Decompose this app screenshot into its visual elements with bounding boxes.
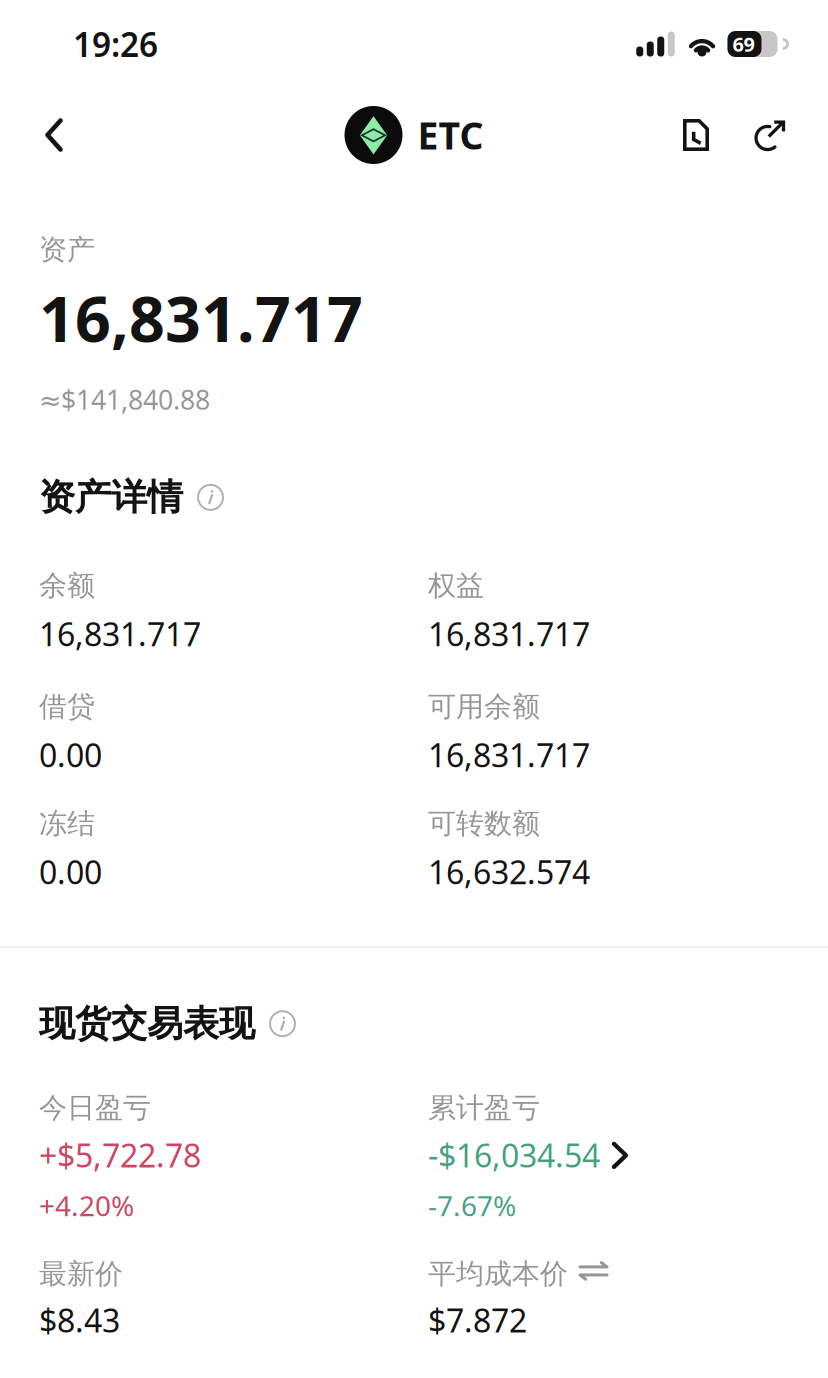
staticText: +$5,722.78 (39, 1133, 201, 1177)
button[interactable]: 累计盈亏 (428, 1090, 626, 1221)
staticText: $7.872 (428, 1298, 527, 1342)
staticText: 资产详情 (39, 475, 183, 520)
staticText: 最新价 (39, 1256, 123, 1292)
staticText: +4.20% (39, 1186, 134, 1224)
staticText: ETC (417, 110, 483, 160)
staticText: 16,831.717 (428, 612, 590, 656)
staticText: 平均成本价 (428, 1256, 568, 1292)
staticText: 0.00 (39, 733, 102, 777)
staticText: 累计盈亏 (428, 1090, 540, 1126)
button[interactable]: Switch cost basis (580, 1263, 607, 1285)
button[interactable]: Order history (661, 100, 731, 170)
staticText: 0.00 (39, 850, 102, 894)
staticText: 权益 (428, 568, 484, 603)
staticText: 16,632.574 (428, 850, 590, 894)
staticText: 69 (732, 30, 754, 58)
staticText: ≈$141,840.88 (39, 381, 210, 418)
staticText: 16,831.717 (39, 275, 363, 360)
staticText: 可用余额 (428, 689, 540, 724)
button[interactable]: About 现货交易表现 (269, 1010, 296, 1037)
staticText: -7.67% (428, 1186, 516, 1224)
staticText: 16,831.717 (39, 612, 201, 656)
staticText: 资产 (39, 232, 95, 267)
staticText: 今日盈亏 (39, 1090, 151, 1126)
button[interactable]: Share (735, 100, 805, 170)
staticText: 借贷 (39, 689, 95, 724)
staticText: 现货交易表现 (39, 1001, 255, 1046)
button[interactable]: Back (18, 99, 90, 171)
staticText: $8.43 (39, 1298, 120, 1342)
staticText: 冻结 (39, 806, 95, 841)
staticText: 19:26 (73, 21, 158, 67)
staticText: 可转数额 (428, 806, 540, 841)
staticText: 16,831.717 (428, 733, 590, 777)
staticText: 余额 (39, 568, 95, 603)
staticText: -$16,034.54 (428, 1133, 600, 1177)
button[interactable]: About 资产详情 (197, 484, 224, 511)
